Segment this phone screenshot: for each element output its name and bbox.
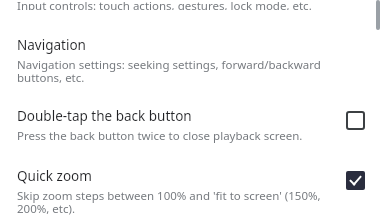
staticText: Quick zoom (17, 167, 92, 185)
button[interactable]: Double-tap the back button (0, 107, 384, 144)
staticText: Skip zoom steps between 100% and 'fit to… (17, 188, 321, 216)
staticText: Navigation (17, 36, 86, 54)
other: Quick zoom, checked (346, 171, 365, 190)
other: Double-tap the back button, unchecked (346, 111, 365, 130)
staticText: Navigation settings: seeking settings, f… (17, 57, 321, 85)
button[interactable]: Input controls: touch actions, gestures,… (0, 0, 384, 12)
button[interactable]: Quick zoom (0, 167, 384, 216)
staticText: Press the back button twice to close pla… (17, 128, 303, 144)
staticText: Input controls: touch actions, gestures,… (17, 0, 312, 10)
staticText: Double-tap the back button (17, 107, 192, 125)
button[interactable]: Navigation (0, 36, 384, 85)
